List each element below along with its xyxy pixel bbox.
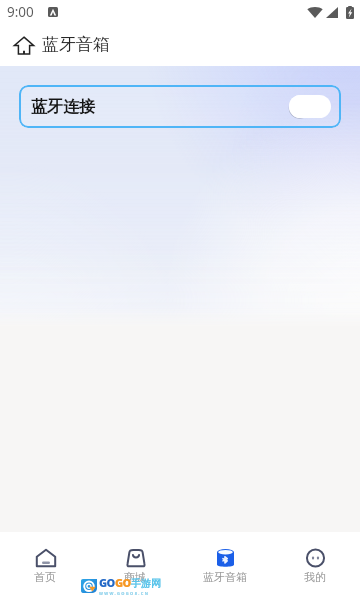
staticText: 蓝牙音箱 [203,570,247,584]
button[interactable]: 蓝牙连接 [19,85,341,128]
button[interactable]: 蓝牙音箱 [180,532,270,600]
staticText: 手游网 [131,577,161,590]
staticText: GO [115,575,131,590]
staticText: WWW.GOGO8.CN [99,591,150,596]
staticText: GO [99,575,115,590]
button[interactable]: Bluetooth toggle [289,95,331,118]
staticText: 9:00 [7,3,34,21]
button[interactable]: Home [11,32,37,58]
button[interactable]: 商城 [90,532,180,600]
staticText: 蓝牙连接 [31,97,95,117]
button[interactable]: 首页 [0,532,90,600]
staticText: 首页 [34,570,56,584]
button[interactable]: 我的 [270,532,360,600]
staticText: 商城 [124,570,146,584]
staticText: 我的 [304,570,326,584]
staticText: 蓝牙音箱 [42,34,110,55]
